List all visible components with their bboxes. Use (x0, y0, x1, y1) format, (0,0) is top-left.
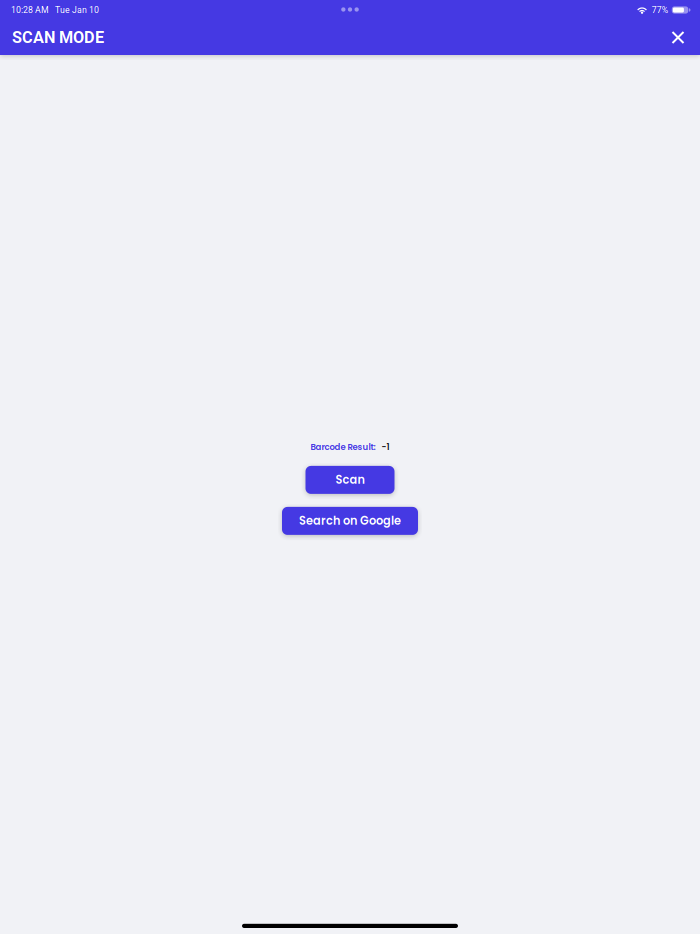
button[interactable]: Scan (305, 466, 394, 494)
staticText: Search on Google (299, 513, 401, 529)
staticText: Tue Jan 10 (55, 5, 99, 15)
staticText: Scan (335, 472, 364, 488)
staticText: 77% (652, 5, 668, 15)
staticText: Barcode Result: (310, 441, 375, 453)
staticText: -1 (381, 441, 389, 453)
staticText: 10:28 AM (11, 5, 49, 15)
staticText: SCAN MODE (12, 28, 104, 47)
button[interactable]: Close scan mode (663, 22, 693, 52)
button[interactable]: Search on Google (282, 507, 418, 535)
